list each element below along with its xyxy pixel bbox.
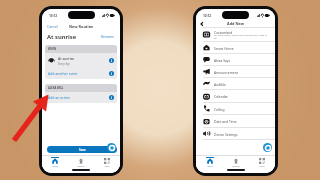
- staticText: 10:12: [203, 14, 212, 18]
- button[interactable]: Alexa Says: [196, 54, 275, 65]
- button[interactable]: Announcement: [196, 66, 275, 77]
- staticText: Save: [79, 148, 86, 152]
- button[interactable]: Add another event: [45, 68, 117, 79]
- staticText: ALEXA WILL: [48, 86, 64, 90]
- other: More info: [109, 58, 114, 63]
- staticText: Add an action: [48, 95, 70, 100]
- staticText: More: [259, 165, 265, 168]
- staticText: Date and Time: [214, 119, 237, 123]
- staticText: More: [104, 165, 110, 168]
- button[interactable]: Devices: [223, 156, 249, 168]
- staticText: WHEN: [48, 47, 57, 51]
- button[interactable]: Alexa voice: [107, 143, 116, 152]
- staticText: Alexa Says: [214, 58, 231, 62]
- staticText: Smart Home: [214, 46, 234, 50]
- staticText: i: [111, 59, 112, 63]
- button[interactable]: Audible: [196, 78, 275, 89]
- staticText: i: [111, 72, 112, 76]
- button[interactable]: Devices: [68, 156, 94, 168]
- staticText: Announcement: [214, 70, 238, 74]
- staticText: Devices: [77, 165, 85, 168]
- button[interactable]: Save: [47, 146, 117, 153]
- staticText: Audible: [214, 82, 226, 86]
- staticText: Home: [52, 165, 58, 168]
- staticText: Every day: [58, 62, 70, 66]
- staticText: At sunrise: [47, 33, 77, 41]
- staticText: Add another event: [48, 71, 78, 76]
- staticText: At sunrise: [58, 56, 75, 61]
- staticText: Device Settings: [214, 132, 238, 136]
- button[interactable]: At sunrise: [45, 53, 117, 68]
- staticText: Calling: [214, 107, 225, 111]
- button[interactable]: Calling: [196, 103, 275, 114]
- button[interactable]: Customized: [196, 28, 275, 41]
- button[interactable]: Alexa voice: [263, 143, 272, 152]
- button[interactable]: More: [249, 156, 275, 168]
- staticText: 10:12: [49, 14, 58, 18]
- button[interactable]: Device Settings: [196, 128, 275, 139]
- staticText: New Routine: [69, 24, 94, 29]
- staticText: Customized: [214, 30, 233, 34]
- button[interactable]: Add an action: [45, 92, 117, 103]
- button[interactable]: Rename: [101, 34, 115, 39]
- button[interactable]: Calendar: [196, 90, 275, 102]
- staticText: For more actions, type in what you would…: [214, 34, 268, 40]
- other: More info: [109, 71, 114, 76]
- button[interactable]: Cancel: [42, 24, 58, 29]
- button[interactable]: Date and Time: [196, 115, 275, 127]
- button[interactable]: Smart Home: [196, 42, 275, 53]
- staticText: Home: [207, 165, 213, 168]
- button[interactable]: Home: [42, 156, 68, 168]
- staticText: Devices: [232, 165, 240, 168]
- button[interactable]: Back: [198, 20, 205, 27]
- button[interactable]: Home: [196, 156, 223, 168]
- button[interactable]: More: [94, 156, 120, 168]
- staticText: Calendar: [214, 94, 228, 98]
- staticText: Add New: [227, 21, 244, 26]
- staticText: i: [111, 96, 112, 100]
- other: More info: [109, 95, 114, 100]
